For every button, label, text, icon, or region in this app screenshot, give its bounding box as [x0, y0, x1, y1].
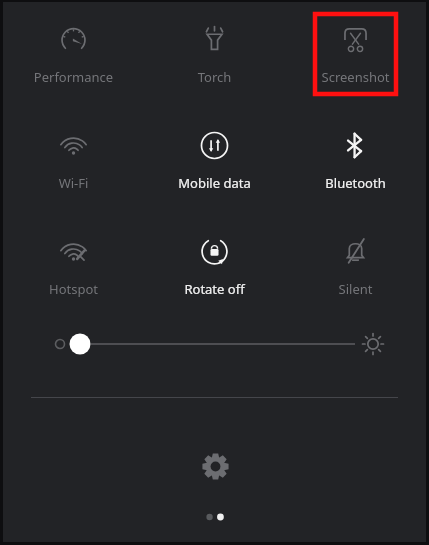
button[interactable]: Silent [313, 225, 398, 307]
button[interactable]: Rotate off [172, 225, 257, 307]
staticText: Screenshot [313, 68, 398, 86]
staticText: Wi-Fi [31, 174, 116, 192]
button[interactable]: Screenshot [313, 13, 398, 95]
staticText: Bluetooth [313, 174, 398, 192]
staticText: Performance [31, 68, 116, 86]
staticText: Hotspot [31, 280, 116, 298]
button[interactable]: Hotspot [31, 225, 116, 307]
button[interactable] [3, 324, 426, 364]
button[interactable]: Wi-Fi [31, 119, 116, 201]
staticText: Mobile data [172, 174, 257, 192]
staticText: Rotate off [172, 280, 257, 298]
button[interactable]: Bluetooth [313, 119, 398, 201]
staticText: Torch [172, 68, 257, 86]
button[interactable]: Settings [191, 442, 239, 490]
button[interactable]: Torch [172, 13, 257, 95]
staticText: Silent [313, 280, 398, 298]
button[interactable]: Performance [31, 13, 116, 95]
button[interactable]: Mobile data [172, 119, 257, 201]
